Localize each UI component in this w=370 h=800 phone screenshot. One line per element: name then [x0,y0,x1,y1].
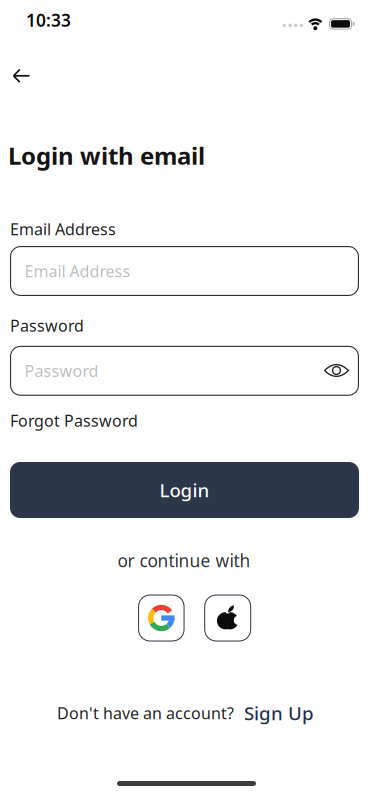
staticText: Login [159,478,209,502]
staticText: Don't have an account? [57,702,234,724]
button[interactable]: Sign Up [244,701,314,725]
button[interactable]: Email Address [10,246,359,296]
staticText: Sign Up [244,701,314,725]
button[interactable]: Password [10,346,359,396]
button[interactable] [7,61,39,91]
staticText: Forgot Password [10,410,138,431]
staticText: Email Address [24,260,130,282]
staticText: Login with email [8,140,205,171]
button[interactable] [204,594,251,641]
button[interactable]: Login [10,462,359,518]
button[interactable] [320,354,352,386]
staticText: Email Address [10,218,116,240]
staticText: 10:33 [26,8,71,31]
button[interactable]: Forgot Password [10,410,138,431]
button[interactable] [138,594,185,641]
staticText: Password [10,315,84,336]
staticText: Password [24,360,98,381]
staticText: or continue with [117,549,250,572]
